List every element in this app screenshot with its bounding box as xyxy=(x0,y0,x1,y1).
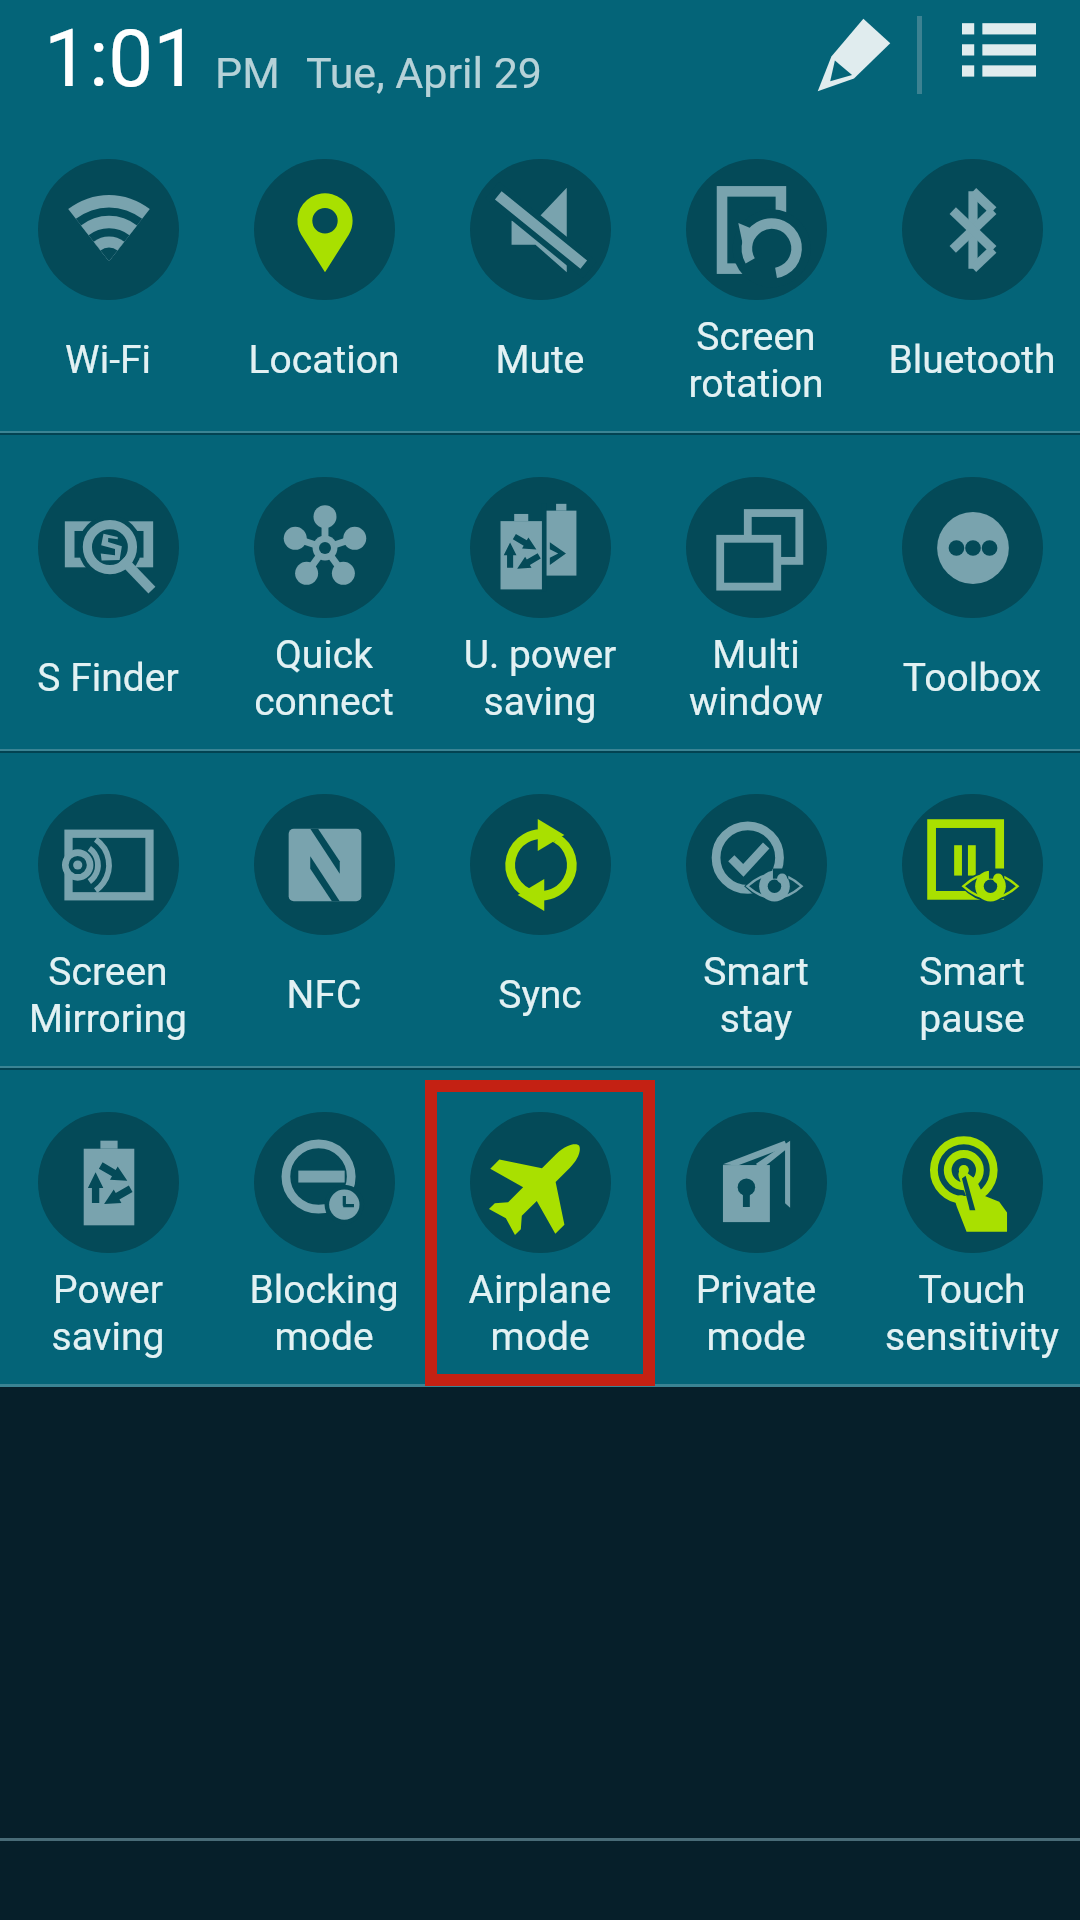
button[interactable]: Power saving xyxy=(0,1093,216,1393)
button[interactable]: Blocking mode xyxy=(216,1093,432,1393)
staticText: Power saving xyxy=(0,1267,216,1360)
button[interactable]: Toolbox xyxy=(864,458,1080,758)
staticText: Smart stay xyxy=(648,949,864,1042)
staticText: NFC xyxy=(216,972,432,1018)
staticText: PM xyxy=(215,48,280,98)
staticText: S Finder xyxy=(0,655,216,701)
staticText: Airplane mode xyxy=(432,1267,648,1360)
staticText: Wi-Fi xyxy=(0,337,216,383)
staticText: Multi window xyxy=(648,632,864,725)
staticText: Mute xyxy=(432,337,648,383)
staticText: Sync xyxy=(432,972,648,1018)
button[interactable]: Quick connect xyxy=(216,458,432,758)
staticText: Private mode xyxy=(648,1267,864,1360)
staticText: Screen rotation xyxy=(648,314,864,407)
button[interactable]: Bluetooth xyxy=(864,140,1080,440)
button[interactable]: Mute xyxy=(432,140,648,440)
staticText: Toolbox xyxy=(864,655,1080,701)
button[interactable]: Touch sensitivity xyxy=(864,1093,1080,1393)
button[interactable]: Airplane mode xyxy=(432,1093,648,1393)
button[interactable]: S Finder xyxy=(0,458,216,758)
staticText: U. power saving xyxy=(432,632,648,725)
button[interactable]: Private mode xyxy=(648,1093,864,1393)
staticText: Location xyxy=(216,337,432,383)
staticText: Screen Mirroring xyxy=(0,949,216,1042)
button[interactable]: NFC xyxy=(216,775,432,1075)
staticText: Touch sensitivity xyxy=(864,1267,1080,1360)
staticText: 1:01 xyxy=(44,12,199,106)
staticText: Quick connect xyxy=(216,632,432,725)
button[interactable]: Smart pause xyxy=(864,775,1080,1075)
button[interactable]: Smart stay xyxy=(648,775,864,1075)
staticText: Tue, April 29 xyxy=(306,48,542,98)
staticText: Bluetooth xyxy=(864,337,1080,383)
button[interactable]: U. power saving xyxy=(432,458,648,758)
button[interactable]: Settings list xyxy=(944,0,1054,110)
button[interactable]: Wi-Fi xyxy=(0,140,216,440)
staticText: Smart pause xyxy=(864,949,1080,1042)
button[interactable]: Location xyxy=(216,140,432,440)
staticText: Blocking mode xyxy=(216,1267,432,1360)
button[interactable]: Multi window xyxy=(648,458,864,758)
button[interactable]: Edit xyxy=(799,0,909,110)
button[interactable]: Screen Mirroring xyxy=(0,775,216,1075)
button[interactable]: Sync xyxy=(432,775,648,1075)
button[interactable]: Screen rotation xyxy=(648,140,864,440)
